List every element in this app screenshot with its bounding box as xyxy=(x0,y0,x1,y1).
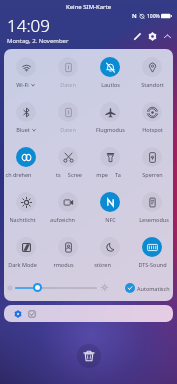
button[interactable]: Standort xyxy=(131,49,173,88)
staticText: ch drehen xyxy=(5,171,32,178)
button[interactable]: Bluet xyxy=(4,94,47,133)
button[interactable]: Flugmodus xyxy=(89,94,131,133)
staticText: N xyxy=(132,12,137,20)
button[interactable]: Edit tiles xyxy=(130,29,145,44)
button[interactable]: ts Scree xyxy=(47,139,89,178)
button[interactable]: rmodus xyxy=(47,229,89,268)
staticText: Hotspot xyxy=(142,126,163,133)
button[interactable]: Automatisch xyxy=(125,283,170,293)
staticText: Bluet xyxy=(16,126,30,133)
button[interactable]: Screenshot xyxy=(26,308,37,319)
staticText: aufzeichn xyxy=(50,216,75,223)
button[interactable]: Brightness xyxy=(33,283,42,292)
staticText: 100% xyxy=(147,13,160,20)
staticText: Automatisch xyxy=(137,285,170,292)
button[interactable]: Daten xyxy=(47,94,89,133)
staticText: Dark Mode xyxy=(8,261,37,268)
staticText: rmodus xyxy=(53,261,74,268)
button[interactable]: Hotspot xyxy=(131,94,173,133)
button[interactable]: Lautlos xyxy=(89,49,131,88)
button[interactable]: Sperren xyxy=(131,139,173,178)
button[interactable]: mpe Ta xyxy=(89,139,131,178)
button[interactable]: DTS-Sound xyxy=(131,229,173,268)
staticText: Daten xyxy=(60,81,76,88)
staticText: Wi-Fi xyxy=(16,81,29,88)
button[interactable]: Dark Mode xyxy=(4,229,47,268)
staticText: Lesemodus xyxy=(139,216,169,223)
staticText: Keine SIM-Karte xyxy=(66,3,112,11)
staticText: Montag, 2. November xyxy=(7,37,69,45)
staticText: NFC xyxy=(105,216,116,223)
button[interactable]: ch drehen xyxy=(4,139,47,178)
staticText: Standort xyxy=(141,81,164,88)
staticText: stören xyxy=(94,261,111,268)
staticText: DTS-Sound xyxy=(138,261,167,268)
staticText: 14:09 xyxy=(7,14,50,37)
button[interactable]: Daten xyxy=(47,49,89,88)
button[interactable]: stören xyxy=(89,229,131,268)
staticText: Daten xyxy=(60,126,76,133)
button[interactable]: Lesemodus xyxy=(131,184,173,223)
staticText: mpe Ta xyxy=(96,171,121,178)
button[interactable]: NFC xyxy=(89,184,131,223)
staticText: Flugmodus xyxy=(96,126,125,133)
staticText: Lautlos xyxy=(101,81,120,88)
staticText: Nachtlicht xyxy=(9,216,36,223)
button[interactable]: aufzeichn xyxy=(47,184,89,223)
button[interactable]: Collapse xyxy=(160,29,175,44)
button[interactable]: Wi-Fi xyxy=(4,49,47,88)
button[interactable]: Settings xyxy=(145,29,160,44)
button[interactable]: Settings xyxy=(12,308,23,319)
staticText: ts Scree xyxy=(56,171,82,178)
button[interactable]: Nachtlicht xyxy=(4,184,47,223)
staticText: Sperren xyxy=(142,171,163,178)
button[interactable]: Clear all notifications xyxy=(77,344,101,368)
